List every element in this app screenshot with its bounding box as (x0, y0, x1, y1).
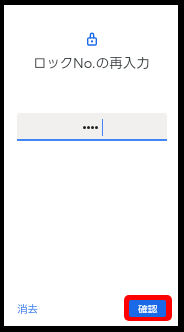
staticText: 確認 (138, 304, 158, 315)
button[interactable]: ロックNo. 入力欄 (17, 113, 167, 141)
button[interactable]: 消去 (13, 299, 42, 319)
other: Locked (87, 32, 97, 46)
staticText: ロックNo.の再入力 (33, 55, 150, 70)
button[interactable]: 確認 (129, 300, 166, 317)
staticText: 消去 (17, 303, 38, 315)
